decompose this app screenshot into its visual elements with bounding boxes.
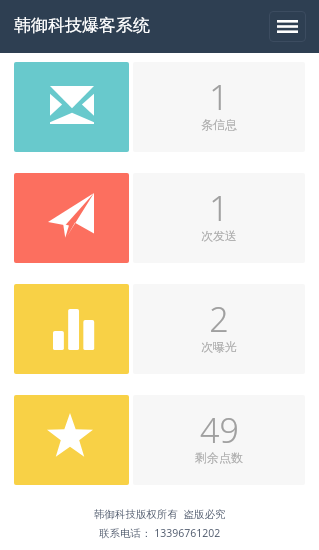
staticText: 剩余点数 (195, 450, 243, 465)
staticText: 次发送 (201, 228, 237, 243)
staticText: 1 (209, 185, 229, 231)
staticText: 条信息 (201, 117, 237, 132)
button[interactable]: 2 (14, 284, 305, 374)
button[interactable]: 49 (14, 395, 305, 485)
staticText: 联系电话： 13396761202 (99, 526, 221, 540)
staticText: 2 (209, 296, 229, 342)
staticText: 次曝光 (201, 339, 237, 354)
staticText: 49 (200, 407, 239, 453)
button[interactable]: 1 (14, 62, 305, 152)
staticText: 1 (209, 74, 229, 120)
staticText: 韩御科技版权所有 盗版必究 (94, 507, 226, 521)
staticText: 韩御科技爆客系统 (14, 15, 150, 36)
button[interactable]: Menu (269, 11, 306, 42)
button[interactable]: 1 (14, 173, 305, 263)
